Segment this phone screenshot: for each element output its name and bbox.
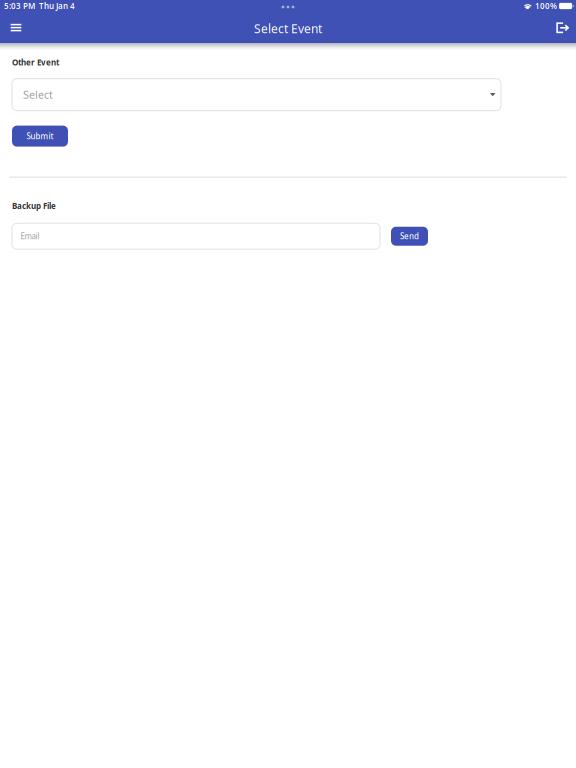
- button[interactable]: Email: [12, 223, 380, 249]
- staticText: 100%: [535, 1, 557, 11]
- staticText: Submit: [26, 131, 53, 141]
- staticText: Send: [400, 231, 419, 241]
- button[interactable]: Log out: [552, 14, 574, 43]
- staticText: Backup File: [12, 201, 56, 211]
- staticText: Thu Jan 4: [39, 1, 75, 11]
- button[interactable]: Select: [12, 79, 501, 111]
- button[interactable]: Submit: [12, 126, 68, 147]
- staticText: Select: [23, 87, 53, 102]
- staticText: 5:03 PM: [4, 1, 35, 11]
- staticText: Email: [20, 231, 39, 241]
- button[interactable]: Send: [391, 227, 428, 246]
- staticText: Select Event: [254, 20, 322, 36]
- staticText: Other Event: [12, 57, 59, 68]
- button[interactable]: Menu: [5, 14, 27, 43]
